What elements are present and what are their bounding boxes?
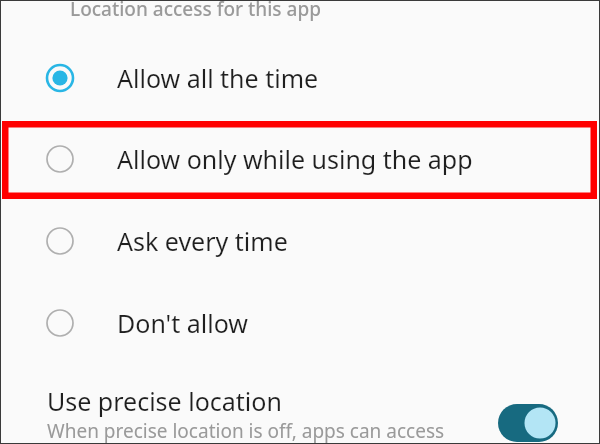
- button[interactable]: Allow only while using the app: [0, 129, 600, 189]
- staticText: When precise location is off, apps can a…: [47, 418, 445, 444]
- button[interactable]: Ask every time: [0, 211, 600, 271]
- staticText: Don't allow: [117, 306, 248, 340]
- button[interactable]: Don't allow: [0, 293, 600, 353]
- button[interactable]: Use precise location toggle, on: [494, 400, 564, 444]
- staticText: Ask every time: [117, 224, 288, 258]
- button[interactable]: Allow all the time: [0, 48, 600, 108]
- staticText: Location access for this app: [70, 0, 321, 22]
- button[interactable]: Use precise location: [0, 372, 600, 444]
- staticText: Allow all the time: [117, 61, 319, 95]
- staticText: Use precise location: [47, 384, 282, 418]
- staticText: Allow only while using the app: [117, 142, 473, 176]
